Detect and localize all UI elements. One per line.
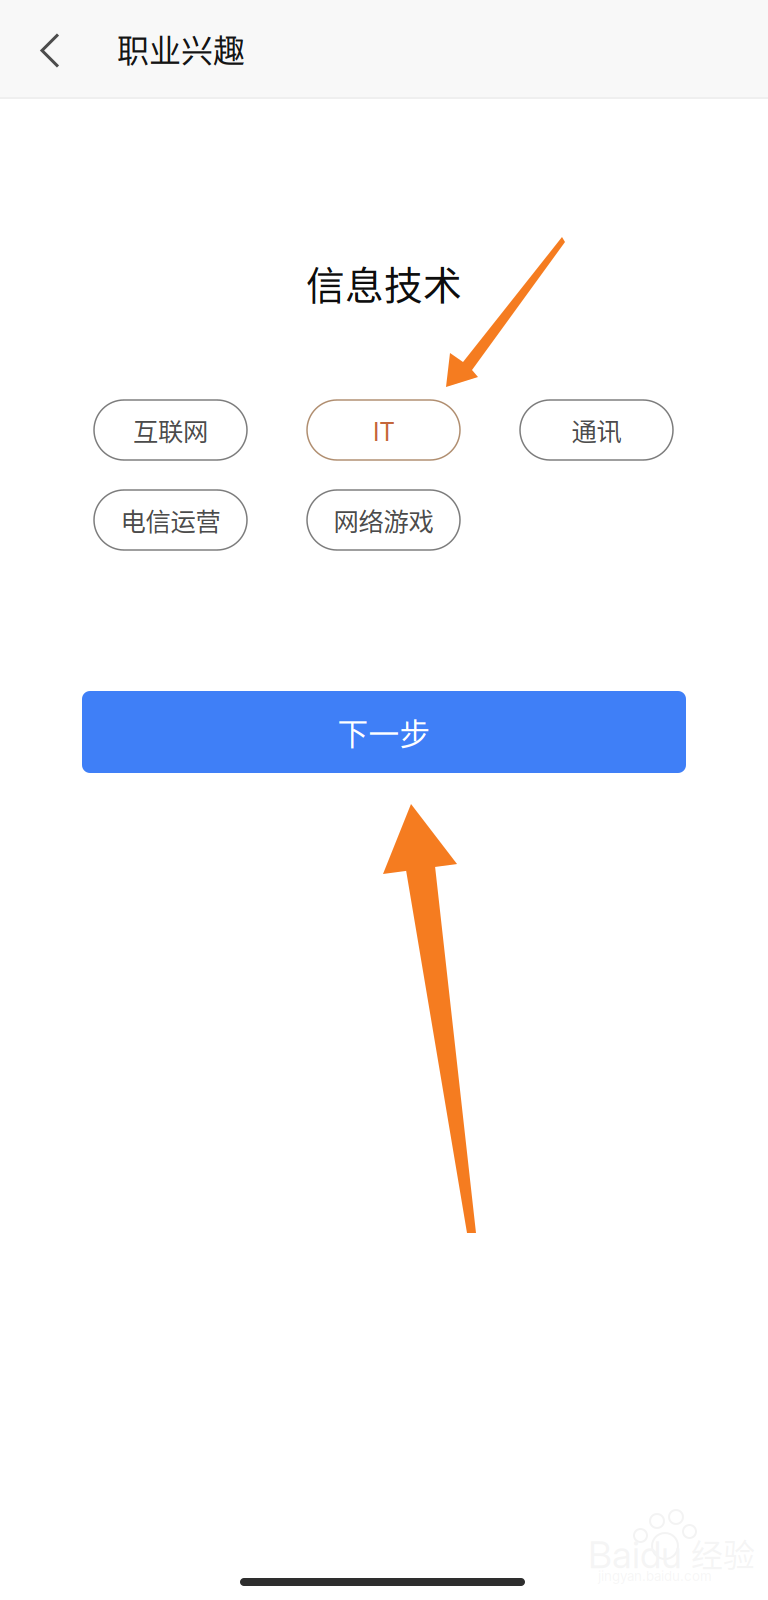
staticText: 职业兴趣 xyxy=(117,25,245,72)
staticText: IT xyxy=(372,412,394,448)
staticText: 互联网 xyxy=(133,412,208,448)
staticText: 电信运营 xyxy=(120,502,220,538)
staticText: 信息技术 xyxy=(306,255,462,311)
staticText: 经验 xyxy=(691,1530,755,1576)
button[interactable]: 下一步 xyxy=(82,691,686,773)
button[interactable]: 返回 xyxy=(15,2,85,99)
staticText: 通讯 xyxy=(571,412,621,448)
button[interactable]: 通讯 xyxy=(520,400,673,460)
button[interactable]: 互联网 xyxy=(94,400,247,460)
staticText: Baidu xyxy=(588,1532,682,1577)
button[interactable]: 网络游戏 xyxy=(307,490,460,550)
button[interactable]: 电信运营 xyxy=(94,490,247,550)
staticText: 网络游戏 xyxy=(333,502,433,538)
staticText: 下一步 xyxy=(337,710,430,754)
button[interactable]: IT xyxy=(307,400,460,460)
